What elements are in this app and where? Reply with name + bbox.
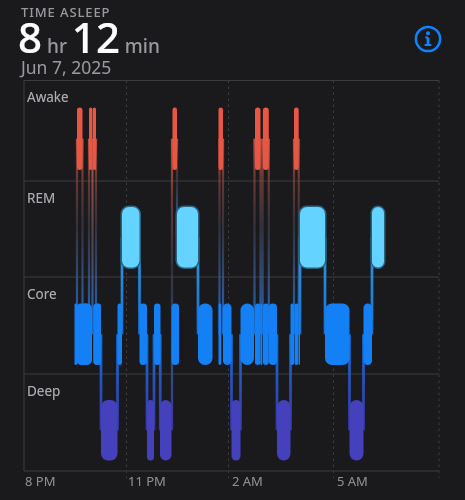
staticText: REM: [27, 189, 56, 207]
staticText: 11 PM: [128, 472, 166, 490]
staticText: Jun 7, 2025: [21, 55, 112, 79]
staticText: 8 hr 12 min: [18, 8, 160, 65]
staticText: 8 PM: [25, 472, 56, 490]
staticText: 2 AM: [232, 472, 263, 490]
staticText: Core: [27, 285, 57, 303]
button[interactable]: [414, 25, 442, 53]
staticText: TIME ASLEEP: [21, 3, 111, 21]
staticText: 5 AM: [337, 472, 368, 490]
staticText: Deep: [27, 382, 61, 400]
staticText: Awake: [27, 88, 69, 106]
